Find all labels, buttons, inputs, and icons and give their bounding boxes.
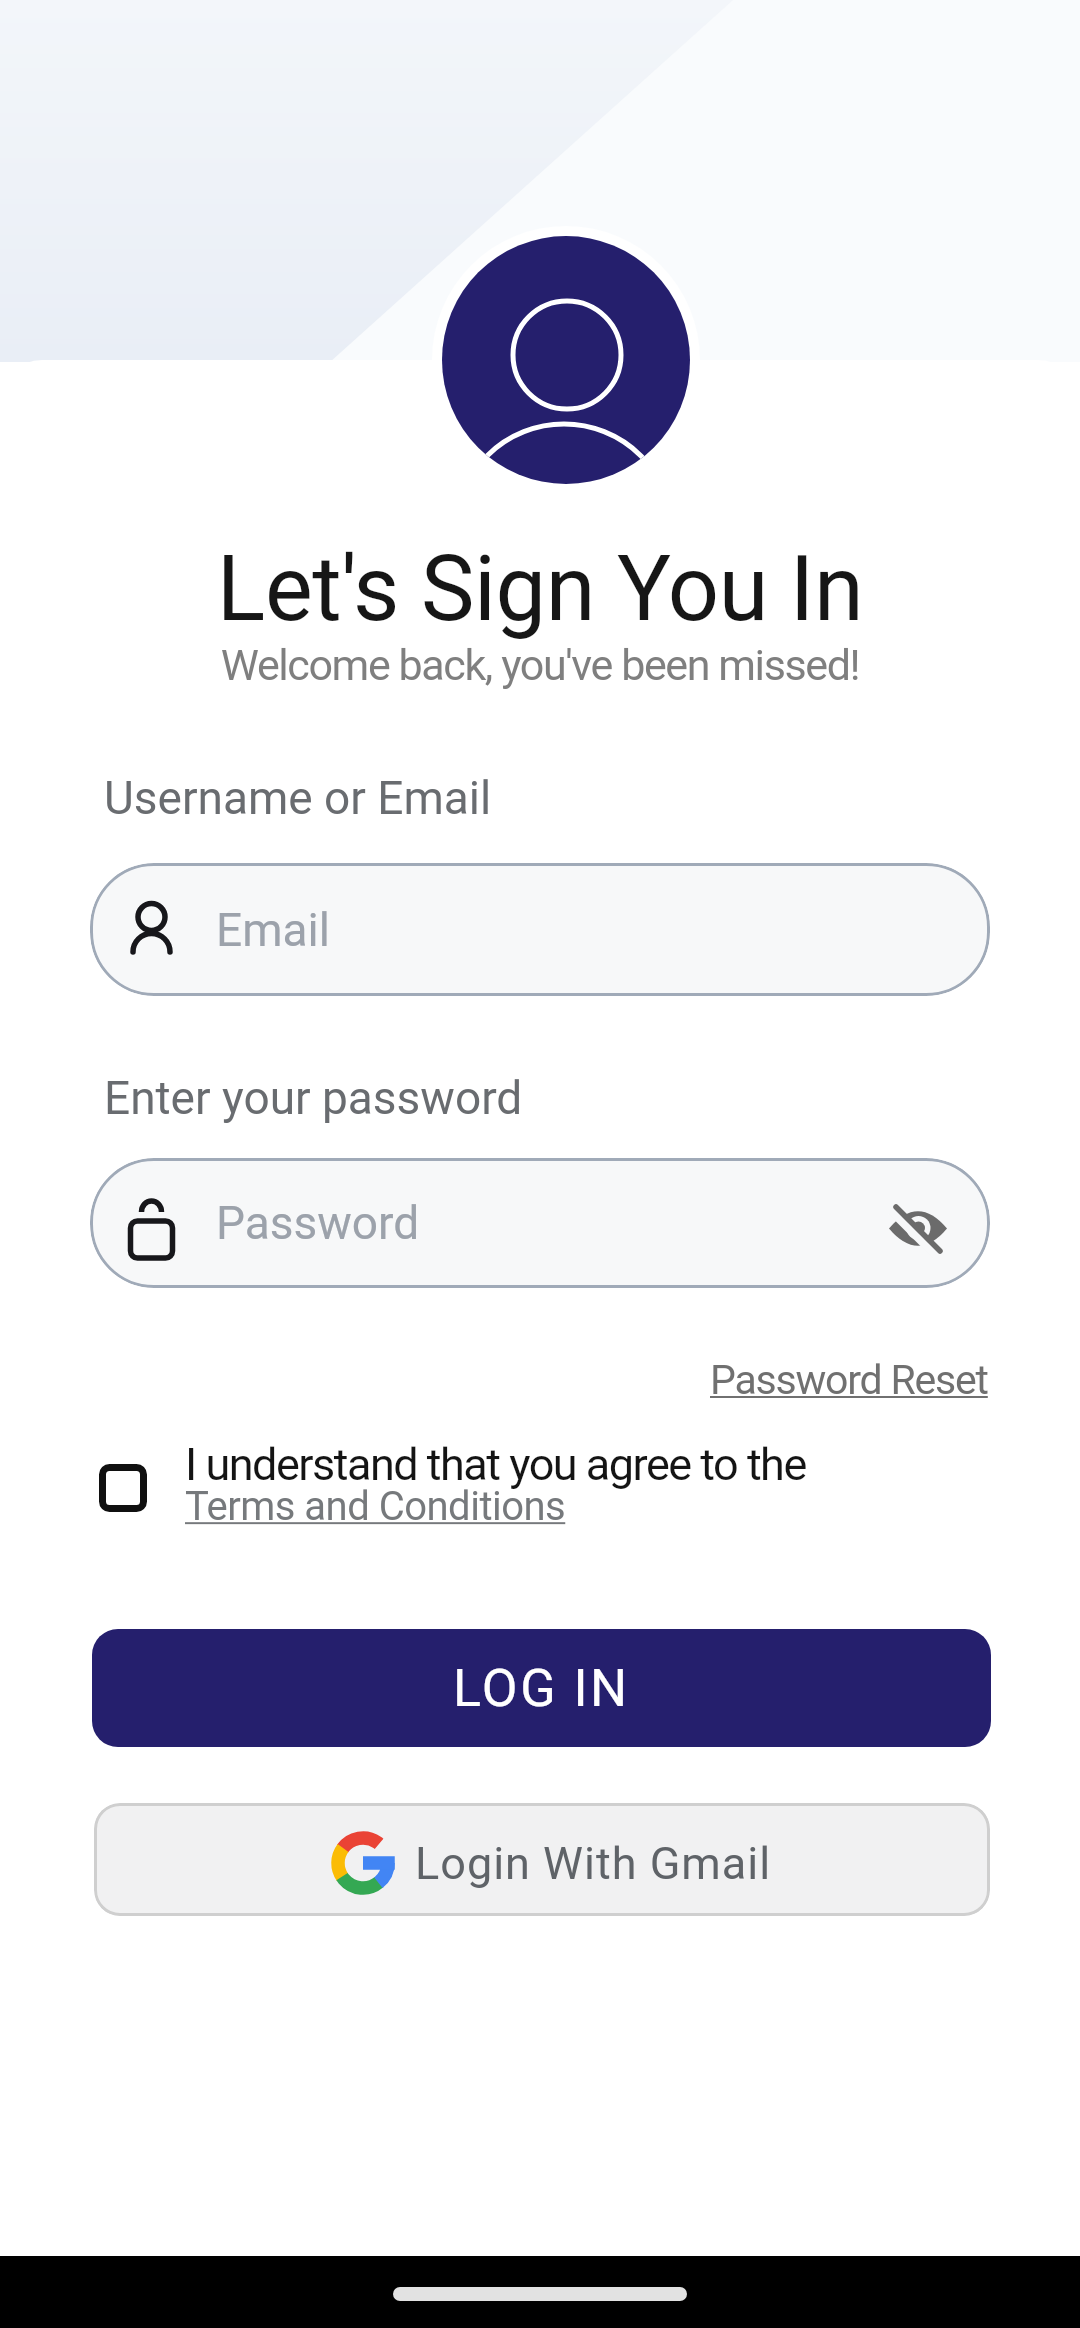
staticText: Username or Email — [104, 771, 492, 825]
staticText: Password — [216, 1196, 420, 1250]
staticText: Enter your password — [104, 1071, 523, 1125]
button[interactable]: Login With Gmail — [94, 1803, 990, 1916]
button[interactable]: Password Reset — [710, 1356, 988, 1404]
staticText: Let's Sign You In — [0, 537, 1080, 642]
button[interactable] — [99, 1464, 147, 1512]
button[interactable]: Terms and Conditions — [185, 1483, 566, 1530]
button[interactable]: LOG IN — [92, 1629, 991, 1747]
staticText: Login With Gmail — [415, 1837, 772, 1890]
button[interactable]: Password — [90, 1158, 990, 1288]
staticText: Email — [216, 903, 330, 957]
button[interactable]: I understand that you agree to the — [185, 1438, 806, 1491]
staticText: Welcome back, you've been missed! — [0, 640, 1080, 690]
button[interactable]: Email — [90, 863, 990, 996]
staticText: LOG IN — [453, 1658, 630, 1719]
